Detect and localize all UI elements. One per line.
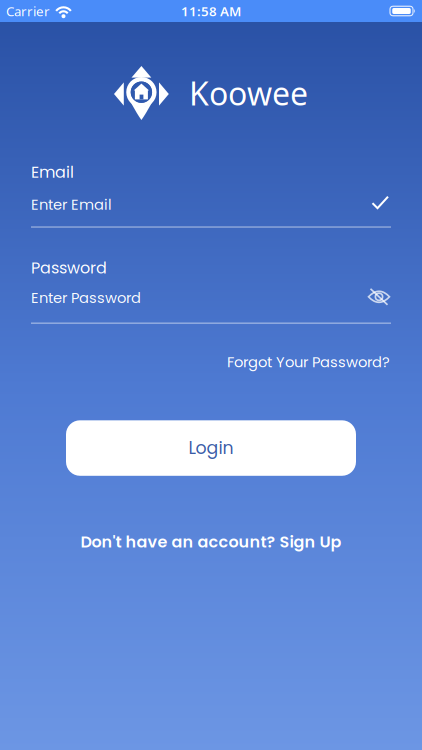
staticText: Enter Password	[31, 287, 141, 308]
staticText: Don't have an account? Sign Up	[80, 531, 341, 553]
button[interactable]: Don't have an account? Sign Up	[80, 531, 341, 553]
staticText: Enter Email	[31, 194, 112, 215]
button[interactable]: Forgot Your Password?	[227, 352, 390, 372]
staticText: Login	[188, 436, 233, 460]
staticText: Forgot Your Password?	[227, 352, 390, 372]
staticText: Carrier	[6, 2, 50, 20]
button[interactable]: Enter Email	[31, 194, 372, 215]
staticText: Email	[31, 161, 74, 183]
staticText: Password	[31, 257, 107, 279]
button[interactable]: Login	[66, 420, 356, 476]
button[interactable]: Show password	[368, 288, 391, 305]
staticText: 11:58 AM	[181, 2, 241, 20]
button[interactable]: Enter Password	[31, 287, 368, 308]
staticText: Koowee	[189, 72, 308, 114]
